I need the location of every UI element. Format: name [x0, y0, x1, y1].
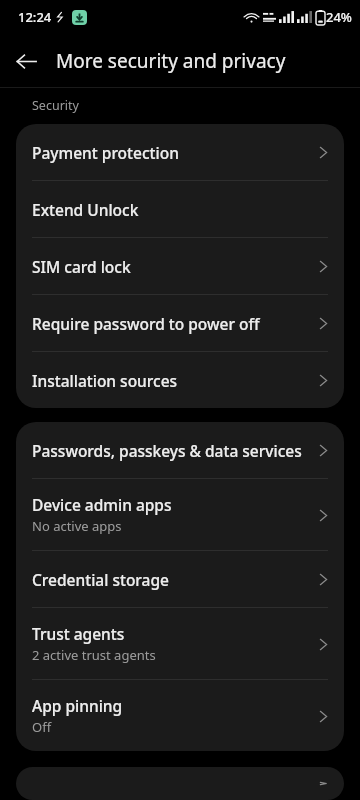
staticText: Device admin apps — [32, 494, 172, 515]
button[interactable]: Extend Unlock — [16, 181, 344, 237]
staticText: 24% — [326, 8, 352, 26]
staticText: Installation sources — [32, 370, 178, 391]
staticText: Passwords, passkeys & data services — [32, 440, 302, 461]
button[interactable]: Device admin apps — [16, 479, 344, 550]
button[interactable]: Back — [0, 35, 52, 87]
staticText: App pinning — [32, 695, 123, 716]
staticText: Require password to power off — [32, 313, 260, 334]
staticText: Extend Unlock — [32, 199, 139, 220]
button[interactable]: Android Safe Browsing — [16, 767, 344, 800]
button[interactable]: Installation sources — [16, 352, 344, 408]
staticText: Security — [32, 97, 79, 114]
button[interactable]: App pinning — [16, 680, 344, 751]
button[interactable]: Payment protection — [16, 124, 344, 180]
staticText: Credential storage — [32, 569, 169, 590]
staticText: Trust agents — [32, 623, 125, 644]
button[interactable]: Trust agents — [16, 608, 344, 679]
staticText: 2 active trust agents — [32, 646, 156, 664]
button[interactable]: Require password to power off — [16, 295, 344, 351]
button[interactable]: Credential storage — [16, 551, 344, 607]
staticText: More security and privacy — [56, 48, 286, 74]
button[interactable]: Passwords, passkeys & data services — [16, 422, 344, 478]
button[interactable]: SIM card lock — [16, 238, 344, 294]
staticText: No active apps — [32, 517, 122, 535]
staticText: 12:24 — [18, 8, 52, 26]
staticText: SIM card lock — [32, 256, 131, 277]
staticText: Payment protection — [32, 142, 179, 163]
staticText: Off — [32, 718, 52, 736]
